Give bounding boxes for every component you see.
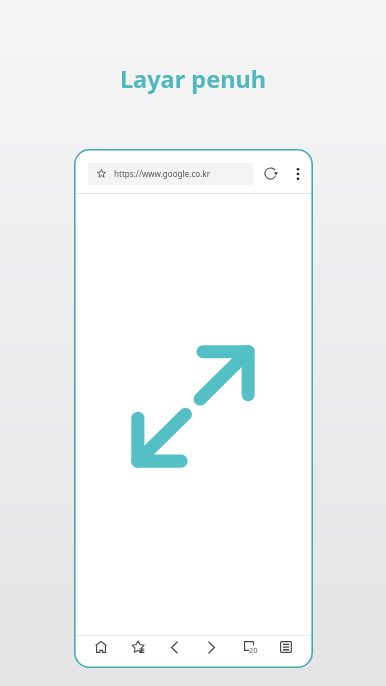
- button[interactable]: Forward: [193, 638, 230, 656]
- button[interactable]: Reload page: [263, 166, 278, 181]
- button[interactable]: Back: [156, 638, 193, 656]
- button[interactable]: Bookmarks: [119, 638, 156, 656]
- button[interactable]: https://www.google.co.kr: [88, 163, 253, 185]
- button[interactable]: Menu: [267, 638, 304, 656]
- staticText: Layar penuh: [0, 63, 386, 95]
- button[interactable]: Tabs, 20 open: [230, 638, 267, 656]
- staticText: 20: [249, 645, 258, 655]
- button[interactable]: More options: [291, 167, 305, 181]
- button[interactable]: Home: [83, 638, 119, 656]
- staticText: https://www.google.co.kr: [114, 168, 211, 179]
